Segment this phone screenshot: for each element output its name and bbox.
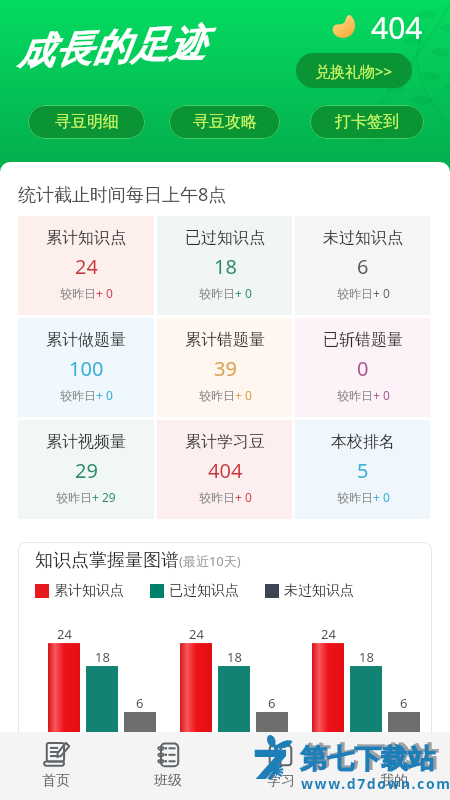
button[interactable]: 本校排名: [295, 420, 430, 519]
staticText: 寻豆攻略: [193, 112, 257, 132]
staticText: 统计截止时间每日上午8点: [18, 182, 227, 207]
staticText: 404: [208, 457, 243, 484]
button[interactable]: 累计视频量: [18, 420, 154, 519]
staticText: + 0: [235, 489, 252, 505]
staticText: 较昨日: [199, 490, 235, 505]
staticText: 未过知识点: [323, 228, 403, 248]
staticText: 18: [227, 648, 242, 666]
staticText: 404: [371, 7, 423, 48]
staticText: 6: [268, 694, 276, 712]
staticText: 已过知识点: [185, 228, 265, 248]
button[interactable]: 班级: [112, 732, 224, 800]
staticText: + 0: [235, 285, 252, 301]
staticText: + 0: [235, 387, 252, 403]
button[interactable]: 寻豆攻略: [169, 105, 280, 139]
staticText: 较昨日: [199, 286, 235, 301]
button[interactable]: 我的: [337, 732, 450, 800]
staticText: 29: [75, 457, 98, 484]
staticText: 班级: [154, 772, 182, 790]
button[interactable]: 累计错题量: [157, 318, 292, 417]
staticText: 我的: [380, 772, 408, 790]
staticText: + 0: [96, 285, 113, 301]
staticText: 24: [189, 625, 204, 643]
staticText: 100: [69, 355, 104, 382]
other: 班级: [155, 742, 182, 769]
staticText: 24: [75, 253, 98, 280]
staticText: 累计知识点: [54, 582, 124, 600]
staticText: + 29: [92, 489, 116, 505]
other: 我的: [380, 742, 407, 769]
button[interactable]: 学习: [224, 732, 337, 800]
staticText: 39: [214, 355, 237, 382]
button[interactable]: 寻豆明细: [28, 105, 145, 139]
other: 学习: [267, 742, 294, 769]
staticText: 较昨日: [60, 286, 96, 301]
staticText: + 0: [373, 285, 390, 301]
staticText: (最近10天): [179, 552, 241, 570]
staticText: 6: [357, 253, 369, 280]
button[interactable]: 打卡签到: [310, 105, 424, 139]
staticText: 成長的足迹: [15, 19, 207, 76]
staticText: 累计知识点: [46, 228, 126, 248]
button[interactable]: 未过知识点: [295, 216, 430, 315]
staticText: 较昨日: [56, 490, 92, 505]
staticText: 累计做题量: [46, 330, 126, 350]
staticText: 较昨日: [337, 286, 373, 301]
staticText: 24: [321, 625, 336, 643]
staticText: 本校排名: [331, 432, 395, 452]
button[interactable]: 兑换礼物>>: [296, 53, 412, 88]
staticText: 0: [357, 355, 369, 382]
staticText: 首页: [42, 772, 70, 790]
staticText: 6: [400, 694, 408, 712]
staticText: 较昨日: [199, 388, 235, 403]
other: 首页: [43, 742, 70, 769]
button[interactable]: 已斩错题量: [295, 318, 430, 417]
staticText: 已斩错题量: [323, 330, 403, 350]
staticText: 较昨日: [337, 388, 373, 403]
staticText: + 0: [373, 489, 390, 505]
staticText: 较昨日: [337, 490, 373, 505]
staticText: www.d7down.com: [301, 774, 450, 793]
staticText: 累计错题量: [185, 330, 265, 350]
button[interactable]: 已过知识点: [157, 216, 292, 315]
staticText: 18: [95, 648, 110, 666]
staticText: 24: [57, 625, 72, 643]
staticText: 6: [136, 694, 144, 712]
staticText: 累计学习豆: [185, 432, 265, 452]
button[interactable]: 累计做题量: [18, 318, 154, 417]
staticText: 18: [359, 648, 374, 666]
staticText: 兑换礼物>>: [315, 61, 393, 81]
staticText: 累计视频量: [46, 432, 126, 452]
button[interactable]: 累计知识点: [18, 216, 154, 315]
staticText: 较昨日: [60, 388, 96, 403]
staticText: 5: [357, 457, 369, 484]
staticText: 寻豆明细: [55, 112, 119, 132]
staticText: 第七下载站: [303, 740, 438, 774]
staticText: 学习: [267, 772, 295, 790]
staticText: + 0: [373, 387, 390, 403]
staticText: 18: [214, 253, 237, 280]
staticText: 未过知识点: [284, 582, 354, 600]
button[interactable]: 累计学习豆: [157, 420, 292, 519]
button[interactable]: 首页: [0, 732, 112, 800]
staticText: + 0: [96, 387, 113, 403]
staticText: 打卡签到: [335, 112, 399, 132]
staticText: 第七下载站: [300, 742, 435, 776]
staticText: 知识点掌握量图谱: [35, 549, 179, 572]
staticText: 已过知识点: [169, 582, 239, 600]
